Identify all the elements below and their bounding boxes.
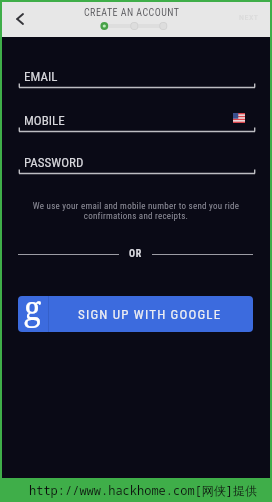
- button[interactable]: g: [18, 296, 253, 332]
- button[interactable]: PASSWORD: [2, 153, 270, 175]
- button[interactable]: EMAIL: [2, 67, 270, 89]
- button[interactable]: NEXT: [239, 13, 259, 22]
- button[interactable]: MOBILE: [2, 111, 270, 133]
- staticText: OR: [129, 248, 142, 260]
- staticText: http://www.hackhome.com[网侠]提供: [29, 482, 258, 498]
- staticText: MOBILE: [24, 113, 65, 128]
- staticText: We use your email and mobile number to s…: [16, 201, 256, 221]
- staticText: CREATE AN ACCOUNT: [84, 7, 180, 19]
- staticText: g: [24, 296, 42, 330]
- button[interactable]: Back: [5, 4, 35, 34]
- staticText: SIGN UP WITH GOOGLE: [78, 307, 222, 322]
- staticText: PASSWORD: [24, 155, 84, 170]
- staticText: EMAIL: [24, 69, 58, 84]
